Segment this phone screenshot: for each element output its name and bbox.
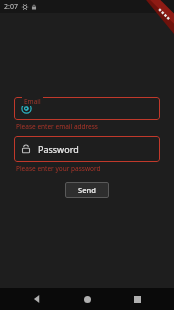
button[interactable]: Home — [74, 288, 100, 310]
staticText: Please enter your password — [16, 164, 101, 173]
staticText: 2:07 — [4, 2, 18, 12]
staticText: Send — [78, 185, 96, 195]
button[interactable]: Email — [14, 97, 160, 120]
button[interactable]: Send — [65, 182, 109, 198]
other: Email — [21, 103, 32, 114]
staticText: Please enter email address — [16, 122, 98, 131]
staticText: Password — [38, 143, 79, 155]
staticText: Email — [24, 97, 41, 106]
button[interactable]: Password — [14, 136, 160, 162]
button[interactable]: Back — [24, 288, 50, 310]
other: Password — [21, 144, 31, 154]
button[interactable]: Recent apps — [124, 288, 150, 310]
